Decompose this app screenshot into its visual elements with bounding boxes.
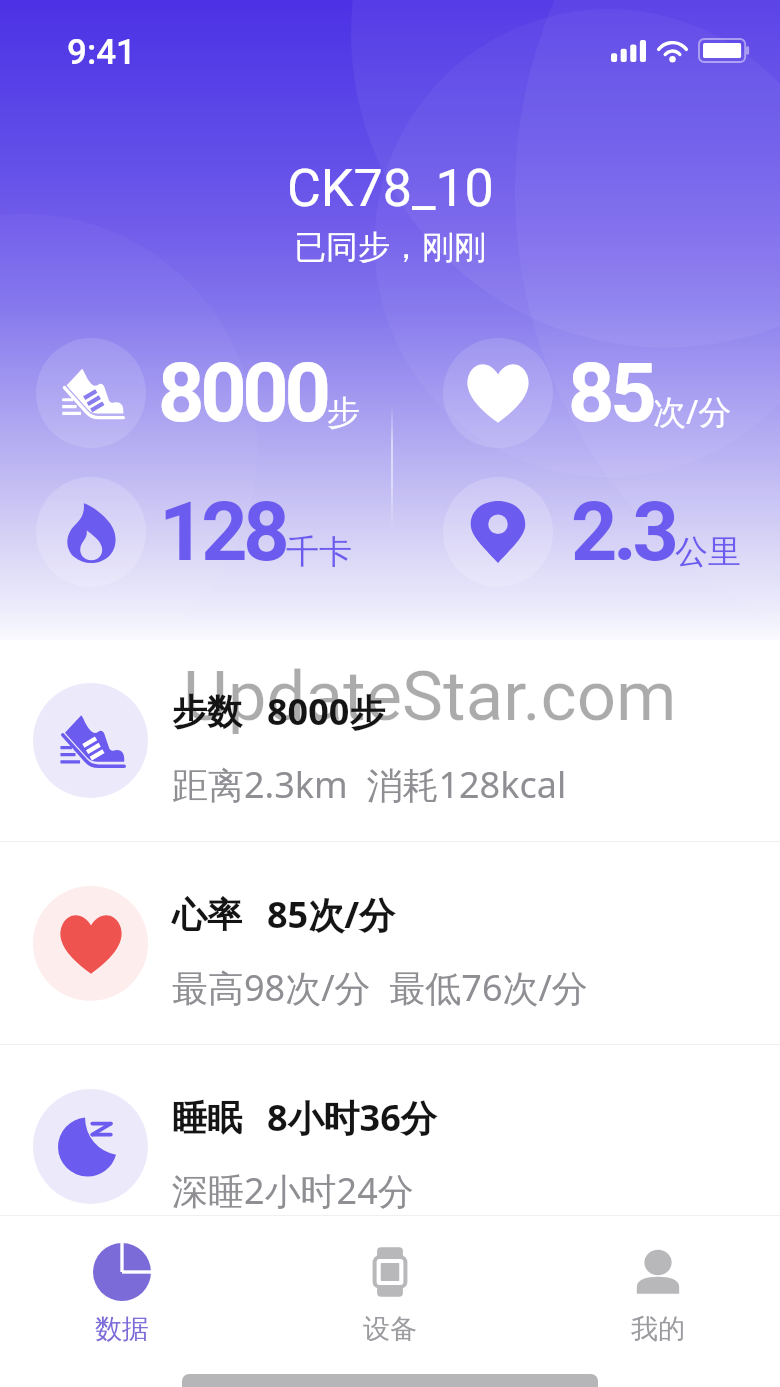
staticText: 设备 — [363, 1312, 417, 1346]
staticText: 128 — [159, 485, 286, 580]
button[interactable]: 心率 — [0, 842, 780, 1044]
button[interactable]: 睡眠 — [0, 1045, 780, 1247]
staticText: 85 — [568, 346, 653, 441]
other: 数据 — [93, 1243, 151, 1301]
button[interactable]: 步数 — [0, 639, 780, 841]
staticText: 数据 — [95, 1312, 149, 1346]
staticText: 睡眠 — [172, 1096, 242, 1140]
button[interactable]: 2.3 — [443, 477, 741, 587]
staticText: 次/分 — [653, 389, 732, 434]
staticText: 公里 — [675, 531, 741, 573]
staticText: 步数 — [172, 690, 242, 734]
button[interactable]: 85 — [443, 338, 732, 448]
staticText: 心率 — [172, 893, 242, 937]
other: 我的 — [629, 1243, 687, 1301]
button[interactable]: 设备 — [330, 1216, 450, 1346]
staticText: 千卡 — [286, 531, 352, 573]
other: 设备 — [361, 1243, 419, 1301]
staticText: 9:41 — [67, 32, 136, 73]
staticText: 深睡2小时24分 — [172, 1166, 414, 1215]
button[interactable]: 8000 — [36, 338, 360, 448]
staticText: 已同步，刚刚 — [294, 227, 486, 267]
staticText: UpdateStar.com — [183, 656, 677, 737]
button[interactable]: 数据 — [62, 1216, 182, 1346]
staticText: 8000步 — [267, 687, 386, 736]
button[interactable]: 128 — [36, 477, 352, 587]
staticText: 我的 — [631, 1312, 685, 1346]
staticText: CK78_10 — [287, 158, 494, 219]
button[interactable]: 我的 — [598, 1216, 718, 1346]
staticText: 步 — [327, 392, 360, 434]
staticText: 8000 — [158, 346, 327, 441]
staticText: 距离2.3km 消耗128kcal — [172, 760, 567, 809]
staticText: 2.3 — [571, 485, 675, 580]
staticText: 8小时36分 — [267, 1093, 437, 1142]
staticText: 最高98次/分 最低76次/分 — [172, 963, 588, 1012]
staticText: 85次/分 — [267, 890, 396, 939]
